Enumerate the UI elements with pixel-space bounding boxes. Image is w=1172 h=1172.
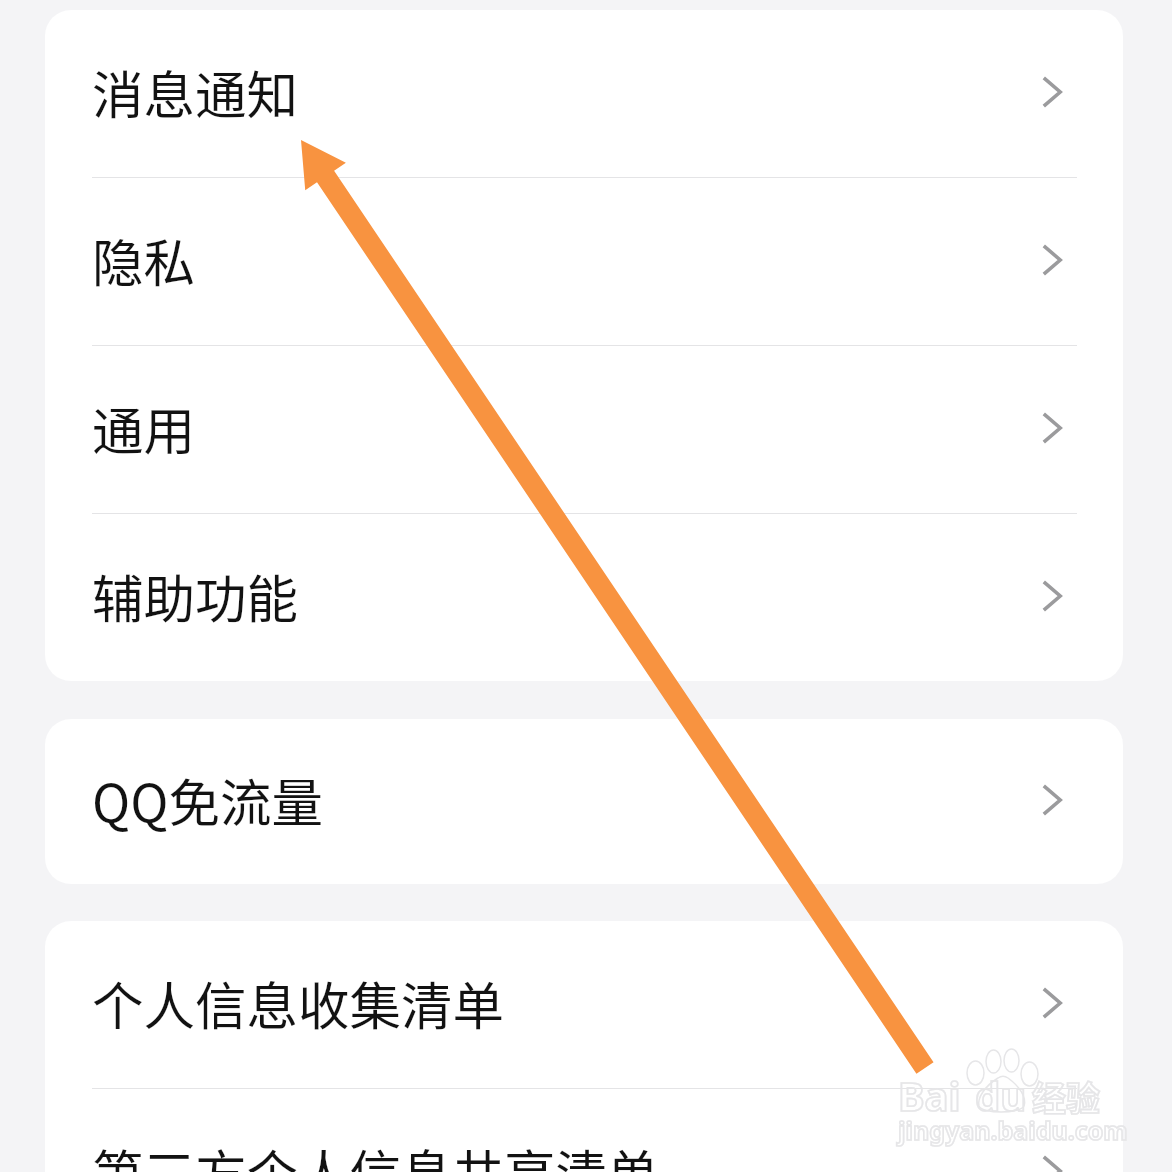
button[interactable]: 通用: [45, 346, 1123, 513]
staticText: 隐私: [92, 222, 196, 297]
other: 通用: [1026, 395, 1078, 465]
other: 第三方个人信息共享清单: [1026, 1138, 1078, 1172]
staticText: 辅助功能: [92, 558, 299, 633]
other: 隐私: [1026, 227, 1078, 297]
button[interactable]: 消息通知: [45, 10, 1123, 177]
other: 个人信息收集清单: [1026, 970, 1078, 1040]
staticText: 经验: [1032, 1072, 1100, 1121]
staticText: 个人信息收集清单: [92, 965, 505, 1040]
staticText: Bai: [898, 1068, 961, 1122]
other: 辅助功能: [1026, 563, 1078, 633]
button[interactable]: 第三方个人信息共享清单: [45, 1089, 1123, 1172]
staticText: 通用: [92, 390, 196, 465]
staticText: jingyan.baidu.com: [898, 1113, 1128, 1147]
other: 消息通知: [1026, 59, 1078, 129]
button[interactable]: 辅助功能: [45, 514, 1123, 681]
button[interactable]: 隐私: [45, 178, 1123, 345]
staticText: QQ免流量: [92, 762, 323, 837]
button[interactable]: 个人信息收集清单: [45, 921, 1123, 1088]
staticText: 第三方个人信息共享清单: [92, 1133, 659, 1172]
other: QQ免流量: [1026, 767, 1078, 837]
button[interactable]: QQ免流量: [45, 719, 1123, 884]
staticText: du: [975, 1068, 1027, 1122]
staticText: 消息通知: [92, 54, 299, 129]
